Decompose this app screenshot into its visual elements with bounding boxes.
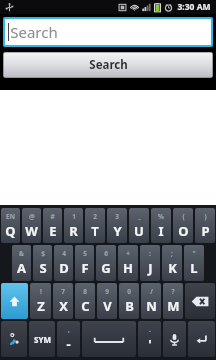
staticText: / (150, 287, 153, 296)
button[interactable]: , (57, 321, 80, 357)
staticText: 8 (83, 287, 87, 296)
button[interactable]: Search (3, 52, 213, 78)
button[interactable]: ; (162, 245, 182, 281)
button[interactable]: _ (129, 208, 149, 243)
staticText: Y (113, 222, 122, 240)
staticText: 4 (62, 249, 66, 258)
button[interactable]: % (151, 208, 171, 243)
staticText: R (69, 222, 78, 240)
staticText: 5 (83, 249, 87, 258)
staticText: ) (204, 212, 207, 221)
button[interactable]: . (138, 321, 161, 357)
staticText: O (178, 222, 189, 240)
staticText: C (81, 297, 90, 315)
button[interactable]: 5 (75, 245, 94, 281)
button[interactable]: $ (33, 245, 52, 281)
button[interactable]: ? (163, 283, 183, 319)
button[interactable]: & (12, 245, 31, 281)
staticText: N (146, 297, 157, 315)
button[interactable]: : (140, 245, 160, 281)
button[interactable]: Space (82, 321, 136, 357)
staticText: ? (171, 287, 175, 296)
staticText: I (158, 222, 164, 240)
staticText: A (17, 259, 26, 277)
staticText: E (49, 222, 57, 240)
staticText: , (68, 325, 70, 334)
staticText: X (59, 297, 68, 315)
staticText: S (39, 259, 47, 277)
button[interactable]: 7 (53, 283, 73, 319)
staticText: G (101, 259, 111, 277)
button[interactable]: @ (22, 208, 41, 243)
staticText: P (201, 222, 210, 240)
staticText: " (192, 249, 196, 258)
staticText: K (168, 259, 177, 277)
button[interactable]: 8 (75, 283, 95, 319)
button[interactable]: ) (195, 208, 215, 243)
staticText: W (25, 222, 38, 240)
staticText: : (149, 249, 151, 258)
button[interactable]: + (118, 245, 138, 281)
staticText: 7 (61, 287, 65, 296)
button[interactable]: 3 (107, 208, 127, 243)
staticText: L (190, 259, 198, 277)
staticText: Q (5, 222, 16, 240)
staticText: . (149, 325, 151, 334)
button[interactable]: SYM (29, 321, 55, 357)
staticText: Z (37, 297, 45, 315)
staticText: # (50, 212, 55, 221)
button[interactable]: 2 (85, 208, 105, 243)
button[interactable]: 0 (119, 283, 139, 319)
button[interactable]: EN (1, 208, 20, 243)
button[interactable]: 6 (96, 245, 116, 281)
staticText: H (123, 259, 133, 277)
staticText: 6 (104, 249, 108, 258)
staticText: D (59, 259, 69, 277)
button[interactable]: " (184, 245, 204, 281)
staticText: ; (171, 249, 173, 258)
button[interactable]: 4 (54, 245, 73, 281)
staticText: Search (89, 57, 128, 73)
staticText: _ (138, 212, 141, 221)
staticText: 1 (72, 212, 76, 221)
staticText: % (158, 212, 164, 221)
staticText: Search (10, 22, 58, 42)
staticText: + (126, 249, 130, 258)
button[interactable]: / (141, 283, 161, 319)
staticText: @ (29, 212, 35, 221)
button[interactable]: ( (173, 208, 193, 243)
staticText: EN (6, 212, 15, 221)
staticText: SYM (34, 334, 51, 345)
button[interactable]: ! (30, 283, 51, 319)
button[interactable]: Change language (1, 321, 27, 357)
staticText: & (19, 249, 24, 258)
staticText: ' (148, 335, 152, 353)
button[interactable]: # (43, 208, 62, 243)
button[interactable]: 9 (97, 283, 117, 319)
button[interactable]: Shift (1, 283, 28, 319)
staticText: J (148, 259, 153, 277)
staticText: 3:30 AM (177, 1, 211, 13)
button[interactable]: 1 (64, 208, 83, 243)
staticText: 0 (127, 287, 131, 296)
staticText: 9 (105, 287, 109, 296)
staticText: T (91, 222, 99, 240)
staticText: M (167, 297, 180, 315)
staticText: V (103, 297, 112, 315)
button[interactable]: Enter (188, 321, 215, 357)
staticText: F (81, 259, 89, 277)
staticText: $ (41, 249, 45, 258)
button[interactable]: Voice input (163, 321, 186, 357)
staticText: B (125, 297, 134, 315)
staticText: 2 (93, 212, 97, 221)
staticText: 3 (115, 212, 119, 221)
staticText: ! (40, 287, 42, 296)
button[interactable]: Delete (185, 283, 215, 319)
button[interactable]: Search (5, 19, 211, 45)
staticText: ( (182, 212, 185, 221)
staticText: - (66, 335, 71, 353)
staticText: U (134, 222, 144, 240)
